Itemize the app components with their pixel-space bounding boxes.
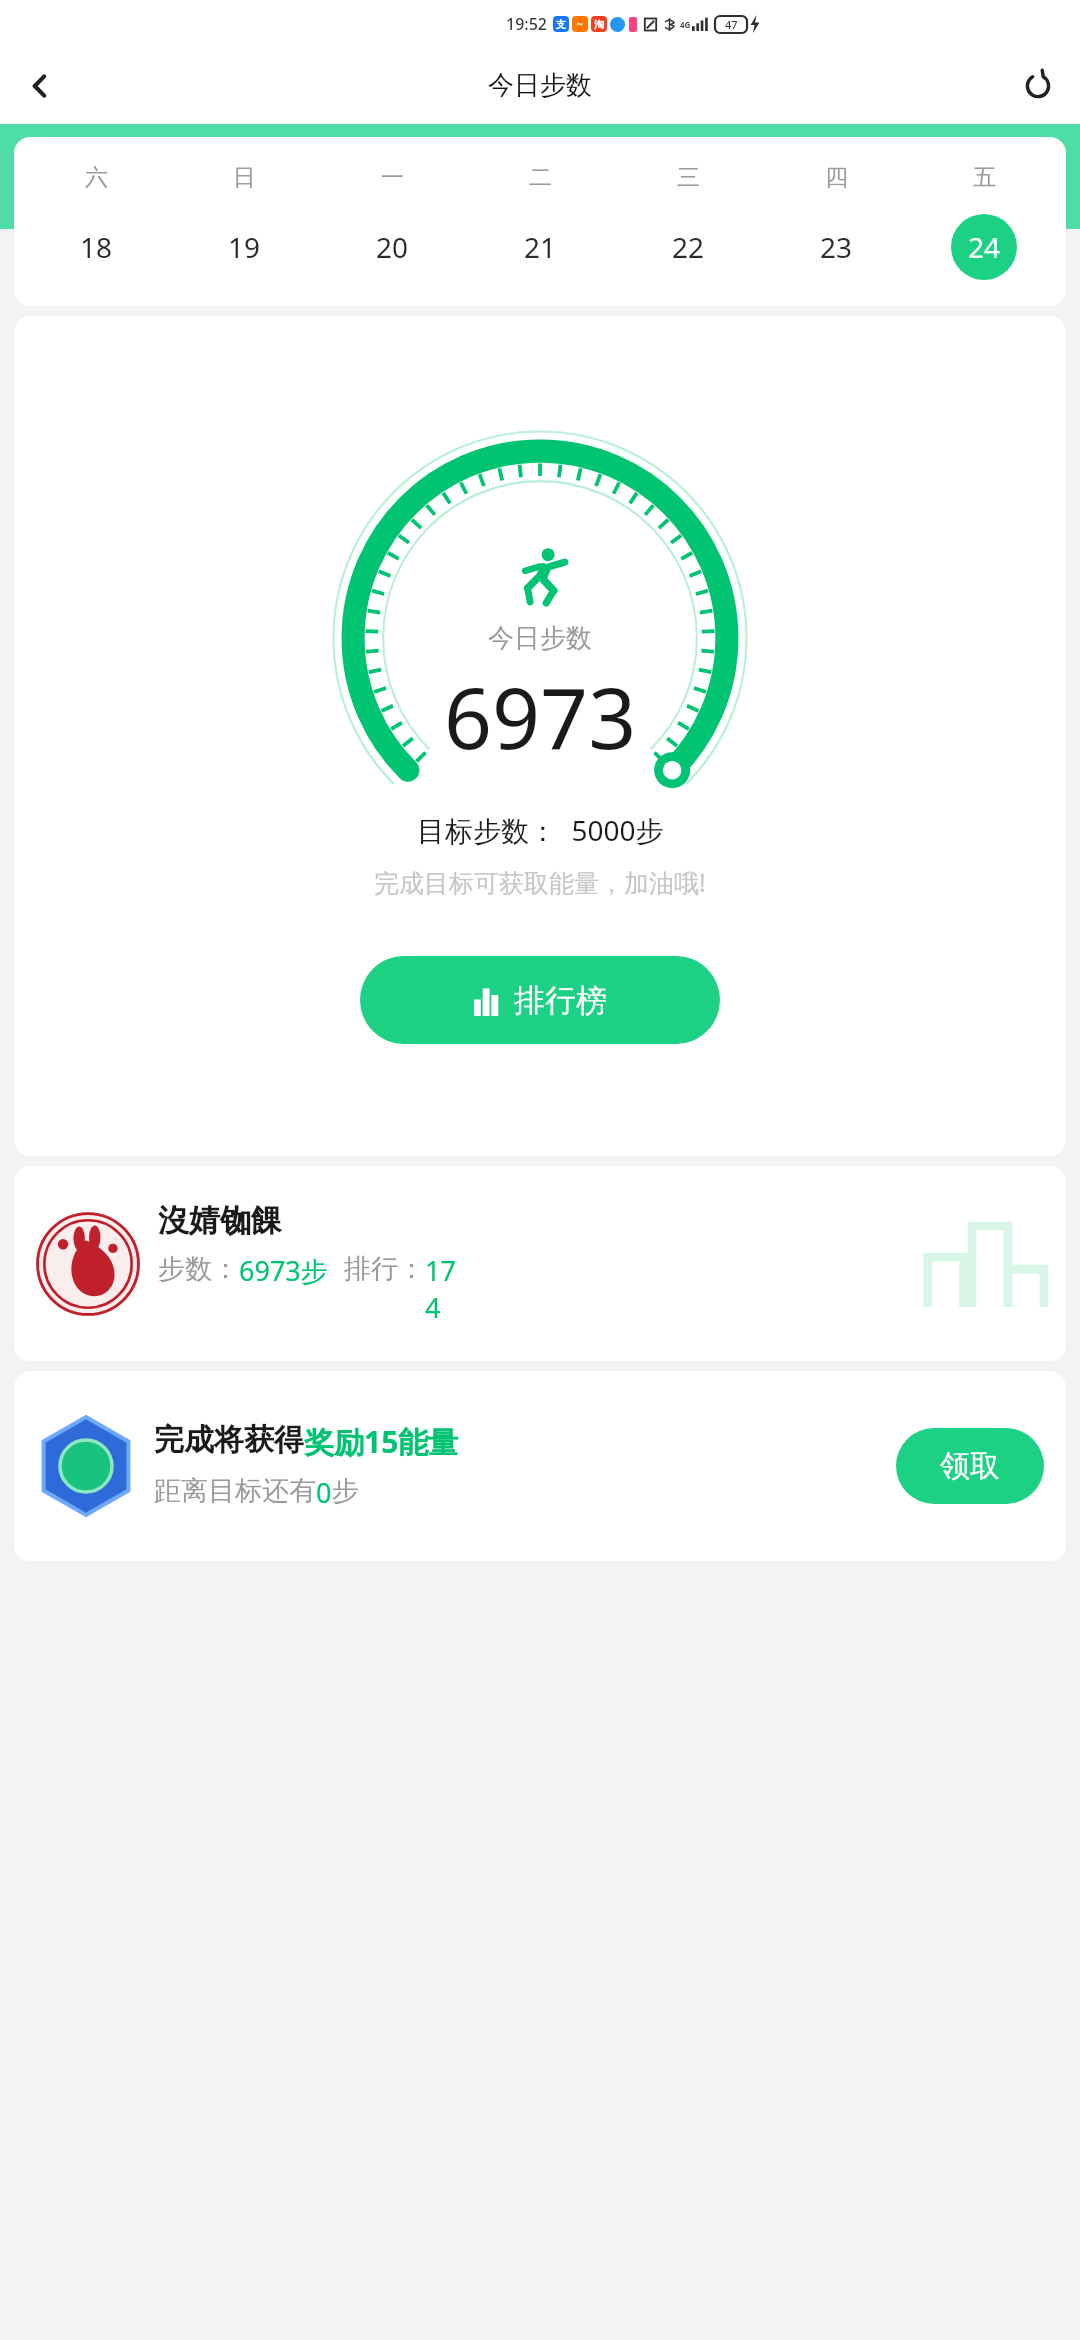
staticText: 目标步数： 5000步 [417, 811, 664, 849]
button[interactable]: 18 [22, 214, 170, 280]
staticText: 五 [973, 163, 996, 192]
staticText: 淘 [594, 18, 604, 31]
button[interactable]: 20 [318, 214, 466, 280]
button[interactable]: 22 [614, 214, 762, 280]
staticText: 20 [376, 228, 409, 266]
staticText: 日 [233, 163, 256, 192]
staticText: 奖励15能量 [304, 1421, 459, 1462]
button[interactable]: 21 [466, 214, 614, 280]
staticText: 6973 [444, 659, 637, 773]
staticText: 今日步数 [488, 69, 592, 102]
staticText: 18 [80, 228, 113, 266]
staticText: 步 [332, 1474, 359, 1508]
staticText: 六 [85, 163, 108, 192]
button[interactable]: 19 [170, 214, 318, 280]
staticText: 19 [228, 228, 261, 266]
staticText: 距离目标还有 [154, 1474, 316, 1508]
staticText: 完成将获得 [154, 1421, 304, 1459]
staticText: 三 [677, 163, 700, 192]
button[interactable]: 24 [910, 214, 1058, 280]
staticText: 二 [529, 163, 552, 192]
staticText: 19:52 [506, 13, 547, 35]
staticText: ~ [577, 17, 583, 31]
staticText: 步数： [158, 1252, 239, 1286]
staticText: 24 [968, 228, 1001, 266]
staticText: 四 [825, 163, 848, 192]
staticText: 22 [672, 228, 705, 266]
staticText: 完成目标可获取能量，加油哦! [374, 865, 706, 899]
staticText: 沒婧铷餜 [158, 1201, 282, 1240]
button[interactable]: Refresh [1010, 58, 1066, 114]
staticText: 6973步 [239, 1252, 328, 1289]
staticText: 174 [425, 1252, 459, 1326]
staticText: 4G [680, 19, 691, 30]
staticText: 47 [725, 17, 738, 32]
button[interactable]: 排行榜 [360, 956, 720, 1044]
staticText: 排行榜 [514, 981, 607, 1020]
staticText: 领取 [940, 1447, 1000, 1485]
staticText: 21 [524, 228, 557, 266]
staticText: 一 [381, 163, 404, 192]
staticText: 今日步数 [488, 622, 592, 655]
staticText: 排行： [344, 1252, 425, 1286]
staticText: 0 [316, 1474, 332, 1511]
staticText: 支 [556, 18, 566, 31]
button[interactable]: 领取 [896, 1428, 1044, 1504]
staticText: 23 [820, 228, 853, 266]
button[interactable]: Back [12, 58, 68, 114]
button[interactable]: 23 [762, 214, 910, 280]
